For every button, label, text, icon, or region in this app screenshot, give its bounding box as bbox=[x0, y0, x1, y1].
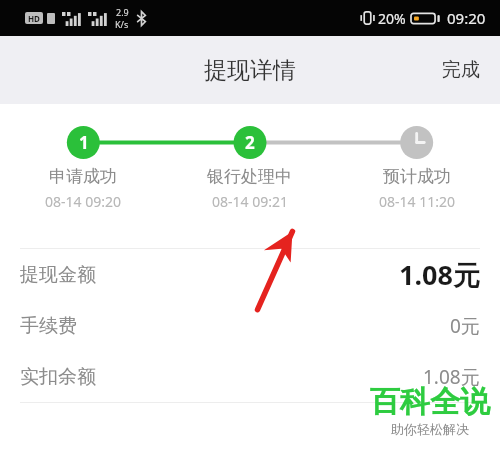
staticText: 完成 bbox=[442, 58, 480, 82]
staticText: 预计成功 bbox=[383, 166, 451, 187]
staticText: 手续费 bbox=[20, 314, 77, 338]
staticText: 百科全说 bbox=[370, 383, 490, 421]
staticText: K/s bbox=[115, 18, 129, 30]
staticText: 提现详情 bbox=[204, 56, 296, 85]
staticText: 0元 bbox=[450, 313, 480, 339]
button[interactable]: 预计成功 bbox=[333, 126, 500, 211]
button[interactable]: 1 bbox=[0, 126, 166, 211]
staticText: 助你轻松解决 bbox=[391, 421, 469, 437]
staticText: 08-14 09:21 bbox=[212, 192, 288, 211]
button[interactable]: 完成 bbox=[422, 42, 500, 98]
button[interactable]: 实扣余额 bbox=[0, 351, 500, 402]
staticText: HD bbox=[28, 13, 40, 24]
staticText: 08-14 09:20 bbox=[45, 192, 121, 211]
staticText: 提现金额 bbox=[20, 263, 96, 287]
button[interactable]: 2 bbox=[166, 126, 333, 211]
button[interactable]: 手续费 bbox=[0, 300, 500, 351]
staticText: 申请成功 bbox=[49, 166, 117, 187]
staticText: 实扣余额 bbox=[20, 365, 96, 389]
staticText: 1.08元 bbox=[423, 364, 480, 390]
staticText: 20% bbox=[378, 9, 406, 28]
staticText: 09:20 bbox=[447, 8, 486, 28]
staticText: 2.9 bbox=[116, 6, 129, 18]
staticText: 1 bbox=[79, 131, 89, 154]
staticText: 银行处理中 bbox=[207, 166, 292, 187]
staticText: 1.08元 bbox=[399, 256, 480, 293]
staticText: 2 bbox=[245, 131, 255, 154]
staticText: 08-14 11:20 bbox=[379, 192, 455, 211]
button[interactable]: 提现金额 bbox=[0, 249, 500, 300]
other: Annotation arrow bbox=[252, 228, 298, 314]
